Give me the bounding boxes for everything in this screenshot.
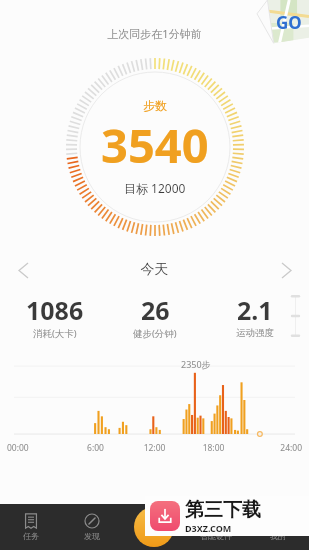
button[interactable]: 我的 [247, 504, 309, 550]
staticText: 18:00 [184, 442, 243, 454]
staticText: 智能硬件 [200, 531, 232, 541]
staticText: 12:00 [125, 442, 184, 454]
staticText: 上次同步在1分钟前 [0, 26, 309, 41]
button[interactable]: 1086 [4, 293, 105, 340]
button[interactable]: 任务 [0, 504, 61, 550]
staticText: 发现 [84, 531, 100, 541]
staticText: D3XZ.COM [185, 522, 232, 534]
staticText: 2.1 [237, 293, 273, 327]
staticText: 26 [141, 293, 170, 327]
button[interactable]: Next day [263, 255, 309, 285]
button[interactable]: 发现 [61, 504, 123, 550]
staticText: 健步(分钟) [133, 327, 177, 340]
staticText: 3540 [101, 113, 209, 177]
button[interactable]: Open map GO [257, 0, 309, 46]
staticText: 1086 [26, 293, 84, 327]
staticText: 今天 [46, 261, 263, 279]
button[interactable]: 26 [105, 293, 205, 340]
button[interactable]: Previous day [0, 255, 46, 285]
staticText: 运动强度 [236, 327, 274, 339]
staticText: 第三下载 [185, 498, 261, 522]
staticText: 24:00 [243, 442, 302, 454]
staticText: GO [276, 11, 302, 34]
staticText: 6:00 [66, 442, 125, 454]
staticText: 2350步 [181, 358, 211, 370]
staticText: 消耗(大卡) [33, 327, 77, 340]
staticText: 我的 [270, 531, 286, 541]
staticText: 00:00 [7, 442, 66, 454]
button[interactable]: 智能硬件 [185, 504, 247, 550]
staticText: 步数 [143, 98, 167, 113]
button[interactable]: Add activity [134, 507, 174, 547]
button[interactable]: 2.1 [205, 293, 305, 339]
staticText: 任务 [23, 531, 39, 541]
staticText: 目标 12000 [124, 180, 186, 196]
